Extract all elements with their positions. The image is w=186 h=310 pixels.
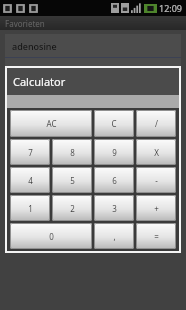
staticText: 5 xyxy=(70,175,75,186)
button[interactable]: = xyxy=(136,223,176,249)
button[interactable]: AC xyxy=(10,110,92,137)
staticText: 1 xyxy=(28,203,33,214)
button[interactable]: cocaine xyxy=(5,58,181,82)
staticText: Favorieten xyxy=(5,18,45,29)
button[interactable]: 9 xyxy=(94,139,134,165)
staticText: adenosine xyxy=(12,40,57,52)
staticText: X xyxy=(154,147,159,158)
staticText: 12:09 xyxy=(159,2,183,14)
staticText: 9 xyxy=(112,147,117,158)
button[interactable]: 8 xyxy=(52,139,92,165)
button[interactable]: 1 xyxy=(10,195,50,221)
staticText: 8 xyxy=(70,147,75,158)
staticText: AC xyxy=(46,118,57,129)
staticText: cocaine xyxy=(12,64,45,76)
staticText: - xyxy=(155,175,158,186)
other: Notification xyxy=(2,3,13,14)
button[interactable]: 4 xyxy=(10,167,50,193)
staticText: 4 xyxy=(28,175,33,186)
button[interactable]: adenosine xyxy=(5,34,181,58)
button[interactable]: 5 xyxy=(52,167,92,193)
staticText: C xyxy=(111,118,117,129)
staticText: 6 xyxy=(112,175,117,186)
other: Notification xyxy=(28,3,39,14)
button[interactable]: 7 xyxy=(10,139,50,165)
button[interactable]: - xyxy=(136,167,176,193)
staticText: / xyxy=(155,118,158,129)
button[interactable]: 0 xyxy=(10,223,92,249)
staticText: 3 xyxy=(112,203,117,214)
staticText: , xyxy=(113,231,116,242)
button[interactable]: , xyxy=(94,223,134,249)
staticText: + xyxy=(154,203,159,214)
button[interactable]: 6 xyxy=(94,167,134,193)
button[interactable]: 2 xyxy=(52,195,92,221)
staticText: 7 xyxy=(28,147,33,158)
staticText: 0 xyxy=(49,231,54,242)
button[interactable]: C xyxy=(94,110,134,137)
staticText: = xyxy=(154,231,159,242)
staticText: Calculator xyxy=(13,74,66,89)
button[interactable]: + xyxy=(136,195,176,221)
button[interactable]: 3 xyxy=(94,195,134,221)
staticText: 2 xyxy=(70,203,75,214)
button[interactable]: X xyxy=(136,139,176,165)
button[interactable]: / xyxy=(136,110,176,137)
other: Notification xyxy=(15,3,26,14)
